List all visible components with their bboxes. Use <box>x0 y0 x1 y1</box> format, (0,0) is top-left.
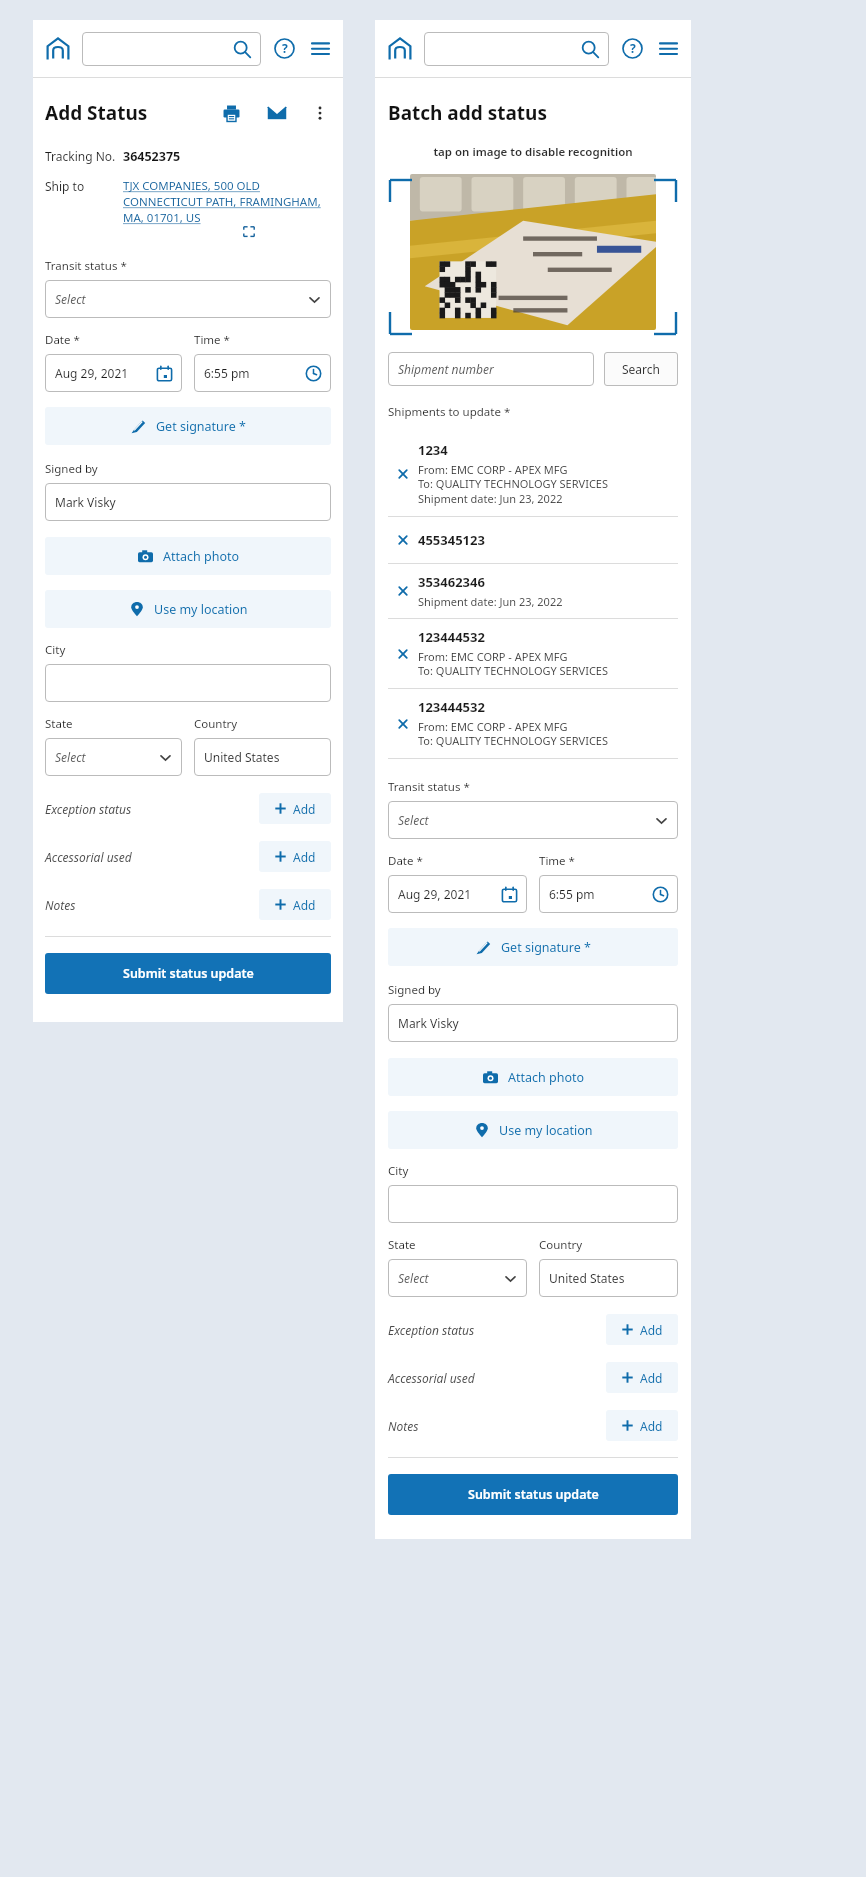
button[interactable]: Use my location <box>388 1111 678 1149</box>
button[interactable]: Remove 455345123 <box>388 517 678 563</box>
button[interactable]: Parcel label photo <box>410 174 656 330</box>
button[interactable]: Remove 123444532 <box>388 619 678 688</box>
button[interactable]: 6:55 pm <box>539 875 678 913</box>
button[interactable]: Email <box>267 103 287 123</box>
staticText: Aug 29, 2021 <box>55 365 129 381</box>
staticText: Transit status * <box>45 258 127 274</box>
staticText: 1234 <box>418 441 448 459</box>
staticText: Add <box>640 1322 663 1338</box>
staticText: Shipment number <box>398 361 494 377</box>
staticText: ? <box>282 40 288 57</box>
staticText: Add Status <box>45 100 222 126</box>
staticText: United States <box>204 749 280 765</box>
button[interactable]: Submit status update <box>45 953 331 994</box>
button[interactable]: Home <box>45 36 71 62</box>
staticText: Shipment date: Jun 23, 2022 <box>418 594 563 609</box>
staticText: Use my location <box>154 601 248 618</box>
staticText: Submit status update <box>468 1486 599 1503</box>
staticText: Exception status <box>388 1322 606 1338</box>
button[interactable]: United States <box>194 738 331 776</box>
button[interactable]: Select <box>388 801 678 839</box>
staticText: State <box>45 716 73 732</box>
button[interactable]: Search <box>82 32 261 66</box>
button[interactable]: 6:55 pm <box>194 354 331 392</box>
button[interactable]: Remove 1234 <box>397 468 409 480</box>
staticText: Accessorial used <box>45 849 259 865</box>
button[interactable]: Search <box>424 32 609 66</box>
staticText: Add <box>640 1370 663 1386</box>
button[interactable]: Remove 123444532 <box>397 648 409 660</box>
button[interactable] <box>45 664 331 702</box>
button[interactable]: Print <box>222 104 241 123</box>
staticText: Signed by <box>45 461 98 477</box>
staticText: Signed by <box>388 982 441 998</box>
button[interactable]: Shipment number <box>388 352 594 386</box>
staticText: Add <box>293 897 316 913</box>
button[interactable]: Menu <box>310 38 331 59</box>
button[interactable]: Aug 29, 2021 <box>45 354 182 392</box>
staticText: 353462346 <box>418 573 485 591</box>
button[interactable]: Attach photo <box>45 537 331 575</box>
button[interactable]: Home <box>387 36 413 62</box>
button[interactable]: Attach photo <box>388 1058 678 1096</box>
staticText: United States <box>549 1270 625 1286</box>
button[interactable]: Remove 123444532 <box>397 718 409 730</box>
staticText: 455345123 <box>418 531 485 549</box>
button[interactable]: TJX COMPANIES, 500 OLD CONNECTICUT PATH,… <box>123 178 321 226</box>
staticText: Attach photo <box>163 548 240 565</box>
staticText: Get signature * <box>156 418 246 435</box>
button[interactable]: Get signature * <box>388 928 678 966</box>
staticText: tap on image to disable recognition <box>388 144 678 160</box>
button[interactable]: Menu <box>658 38 679 59</box>
button[interactable]: Add <box>606 1314 678 1345</box>
staticText: Mark Visky <box>55 494 116 510</box>
staticText: Time * <box>194 332 230 348</box>
button[interactable]: Add <box>259 793 331 824</box>
staticText: Country <box>539 1237 583 1253</box>
staticText: City <box>45 642 66 658</box>
button[interactable]: Remove 123444532 <box>388 689 678 758</box>
staticText: 123444532 <box>418 628 485 646</box>
staticText: Shipments to update * <box>388 404 511 420</box>
staticText: From: EMC CORP - APEX MFG To: QUALITY TE… <box>418 719 609 749</box>
button[interactable]: Add <box>606 1362 678 1393</box>
button[interactable]: Remove 455345123 <box>397 534 409 546</box>
button[interactable]: More options <box>311 104 329 122</box>
button[interactable]: Help <box>274 38 295 59</box>
staticText: Batch add status <box>388 100 547 126</box>
button[interactable]: United States <box>539 1259 678 1297</box>
staticText: Date * <box>388 853 423 869</box>
staticText: Add <box>293 801 316 817</box>
staticText: Country <box>194 716 238 732</box>
staticText: Select <box>398 1270 429 1286</box>
staticText: Add <box>293 849 316 865</box>
button[interactable]: Select <box>45 280 331 318</box>
button[interactable]: Search <box>604 352 678 386</box>
button[interactable]: Mark Visky <box>388 1004 678 1042</box>
button[interactable]: Help <box>622 38 643 59</box>
staticText: City <box>388 1163 409 1179</box>
button[interactable]: Mark Visky <box>45 483 331 521</box>
button[interactable]: Remove 353462346 <box>388 564 678 618</box>
button[interactable]: Aug 29, 2021 <box>388 875 527 913</box>
button[interactable]: Remove 353462346 <box>397 585 409 597</box>
button[interactable]: Add <box>259 841 331 872</box>
button[interactable]: Add <box>259 889 331 920</box>
button[interactable]: Expand address <box>243 226 255 238</box>
staticText: Date * <box>45 332 80 348</box>
button[interactable] <box>388 1185 678 1223</box>
button[interactable]: Remove 1234 <box>388 432 678 516</box>
staticText: From: EMC CORP - APEX MFG To: QUALITY TE… <box>418 649 609 679</box>
staticText: Select <box>55 291 86 307</box>
staticText: TJX COMPANIES, 500 OLD CONNECTICUT PATH,… <box>123 178 321 226</box>
button[interactable]: Submit status update <box>388 1474 678 1515</box>
button[interactable]: Use my location <box>45 590 331 628</box>
staticText: Aug 29, 2021 <box>398 886 472 902</box>
button[interactable]: Select <box>45 738 182 776</box>
button[interactable]: Add <box>606 1410 678 1441</box>
button[interactable]: Get signature * <box>45 407 331 445</box>
button[interactable]: Select <box>388 1259 527 1297</box>
staticText: Tracking No. <box>45 148 123 164</box>
staticText: Search <box>622 361 660 377</box>
staticText: Submit status update <box>123 965 254 982</box>
